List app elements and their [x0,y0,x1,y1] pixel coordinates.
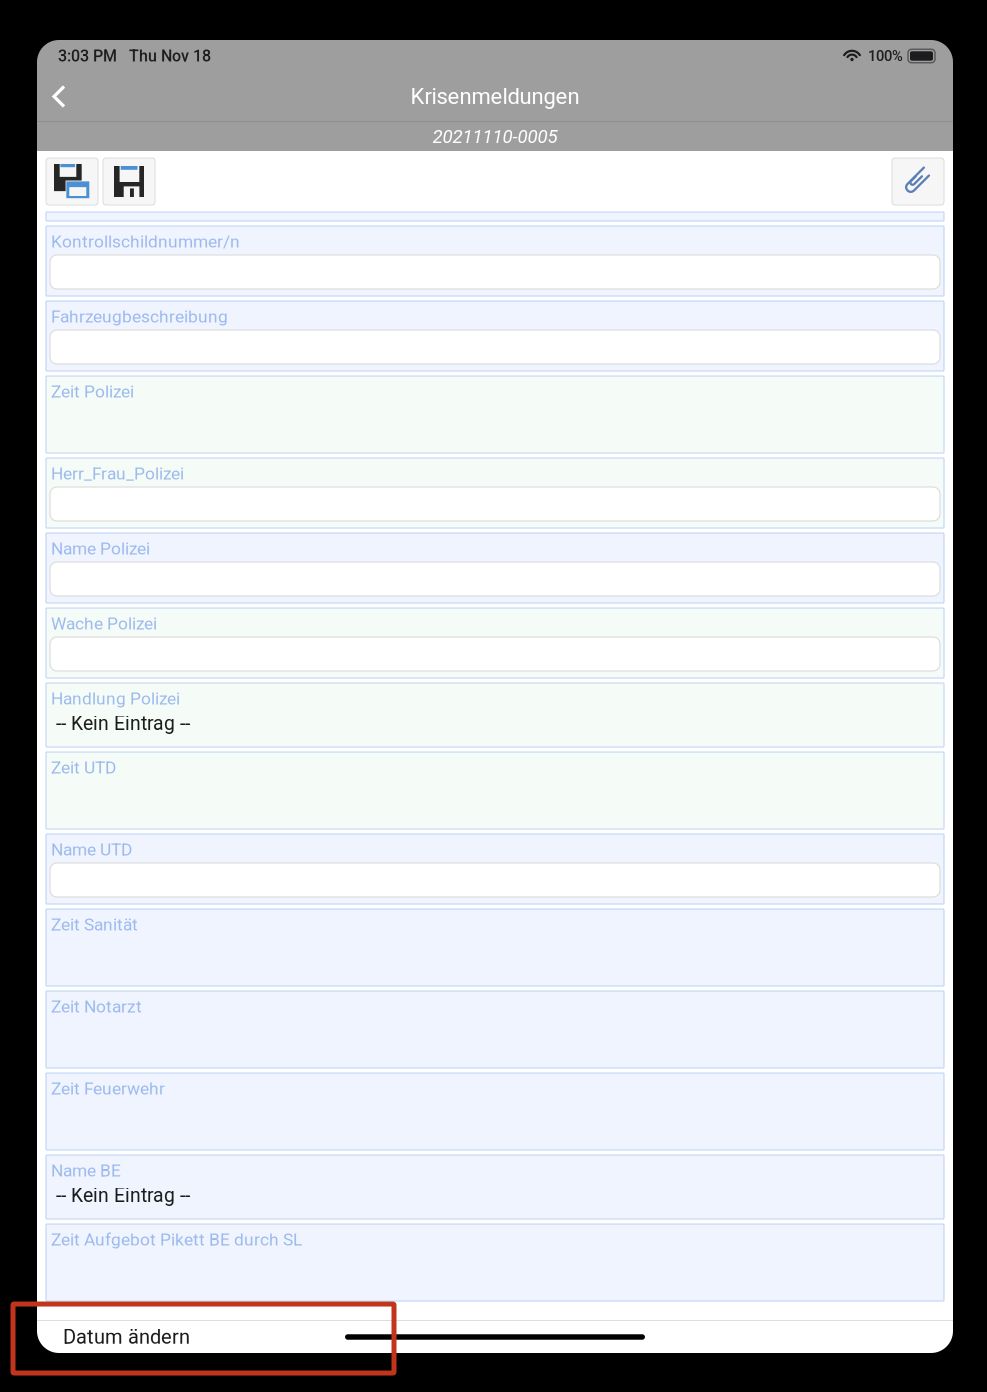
staticText: Thu Nov 18 [129,47,211,65]
staticText: Zeit Aufgebot Pikett BE durch SL [51,1229,302,1250]
button[interactable]: Attachments [892,158,944,205]
staticText: Datum ändern [63,1325,190,1349]
staticText: 100% [868,47,903,65]
button[interactable]: Zeit Aufgebot Pikett BE durch SL [46,1224,944,1301]
button[interactable]: Zeit Sanität [46,909,944,986]
button[interactable]: Wache Polizei [46,608,944,678]
button[interactable]: Herr_Frau_Polizei [46,458,944,528]
staticText: Zeit Feuerwehr [51,1078,165,1099]
staticText: Name UTD [51,839,132,860]
button[interactable]: Zeit Feuerwehr [46,1073,944,1150]
staticText: 20211110-0005 [432,126,557,147]
staticText: Name BE [51,1160,121,1181]
button[interactable]: Datum ändern [37,1321,190,1353]
button[interactable]: Back [37,73,81,119]
button[interactable]: Name Polizei [46,533,944,603]
staticText: Wache Polizei [51,613,157,634]
staticText: Handlung Polizei [51,688,180,709]
staticText: Zeit Polizei [51,381,134,402]
button[interactable]: Name UTD [46,834,944,904]
staticText: -- Kein Eintrag -- [56,712,190,735]
button[interactable]: Fahrzeugbeschreibung [46,301,944,371]
button[interactable]: Kontrollschildnummer/n [46,226,944,296]
button[interactable]: Name BE [46,1155,944,1219]
staticText: -- Kein Eintrag -- [56,1184,190,1207]
button[interactable]: Handlung Polizei [46,683,944,747]
staticText: Name Polizei [51,538,150,559]
staticText: Zeit UTD [51,757,116,778]
staticText: Krisenmeldungen [410,84,579,109]
button[interactable]: Save [103,158,155,205]
staticText: 3:03 PM [58,47,117,65]
button[interactable]: Zeit Polizei [46,376,944,453]
staticText: Herr_Frau_Polizei [51,463,184,484]
staticText: Zeit Sanität [51,914,138,935]
button[interactable]: Save as [46,158,98,205]
staticText: Kontrollschildnummer/n [51,231,240,252]
button[interactable]: Zeit UTD [46,752,944,829]
staticText: Fahrzeugbeschreibung [51,306,228,327]
button[interactable]: Zeit Notarzt [46,991,944,1068]
staticText: Zeit Notarzt [51,996,142,1017]
